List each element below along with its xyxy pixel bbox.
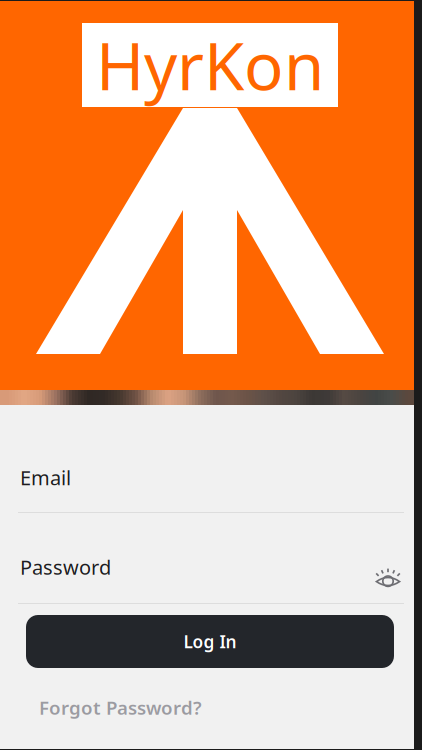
button[interactable]: Log In bbox=[26, 615, 394, 668]
button[interactable]: Show password bbox=[375, 568, 401, 588]
staticText: Forgot Password? bbox=[39, 695, 202, 720]
staticText: Email bbox=[20, 464, 71, 491]
button[interactable]: Password bbox=[0, 513, 414, 603]
button[interactable]: Email bbox=[0, 405, 414, 512]
staticText: Password bbox=[20, 554, 111, 580]
button[interactable]: Forgot Password? bbox=[0, 668, 414, 716]
staticText: Log In bbox=[183, 630, 236, 653]
staticText: HyrKon bbox=[96, 22, 324, 108]
